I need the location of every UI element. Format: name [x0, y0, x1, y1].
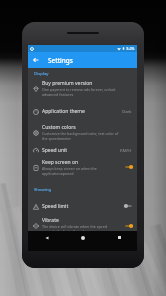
staticText: The device will vibrate when the speed e… — [42, 224, 107, 234]
button[interactable]: Switch on — [123, 163, 134, 171]
staticText: Vibrate — [42, 217, 59, 224]
button[interactable]: Navigate up — [29, 53, 43, 67]
button[interactable]: Buy premium version — [28, 78, 137, 98]
button[interactable]: Home — [65, 231, 101, 251]
staticText: One payment to remove ads forever, unloc… — [42, 87, 116, 97]
button[interactable]: Switch on — [123, 222, 134, 230]
staticText: KM/H — [120, 147, 132, 153]
button[interactable]: Recent apps — [101, 231, 137, 251]
button[interactable]: Back — [28, 231, 65, 251]
staticText: 3:26 — [126, 46, 135, 52]
button[interactable]: Keep screen on — [28, 157, 137, 177]
button[interactable]: Switch off — [123, 202, 134, 210]
button[interactable]: Application theme — [28, 103, 137, 119]
button[interactable]: Speed limit — [28, 198, 137, 214]
staticText: Display — [34, 71, 49, 77]
button[interactable]: Speed unit — [28, 142, 137, 158]
staticText: Showing — [34, 187, 52, 193]
staticText: Always keep screen on when the applicati… — [42, 166, 97, 176]
staticText: Application theme — [42, 108, 85, 115]
staticText: Keep screen on — [42, 159, 79, 166]
staticText: Speed limit — [42, 203, 69, 210]
button[interactable]: Custom colors — [28, 122, 137, 142]
staticText: Customize the background color, text col… — [42, 131, 119, 141]
staticText: Custom colors — [42, 124, 76, 131]
staticText: Dark — [122, 108, 132, 114]
staticText: Buy premium version — [42, 80, 93, 87]
button[interactable]: Vibrate — [28, 215, 137, 236]
staticText: Speed unit — [42, 147, 68, 154]
staticText: Settings — [48, 56, 73, 65]
